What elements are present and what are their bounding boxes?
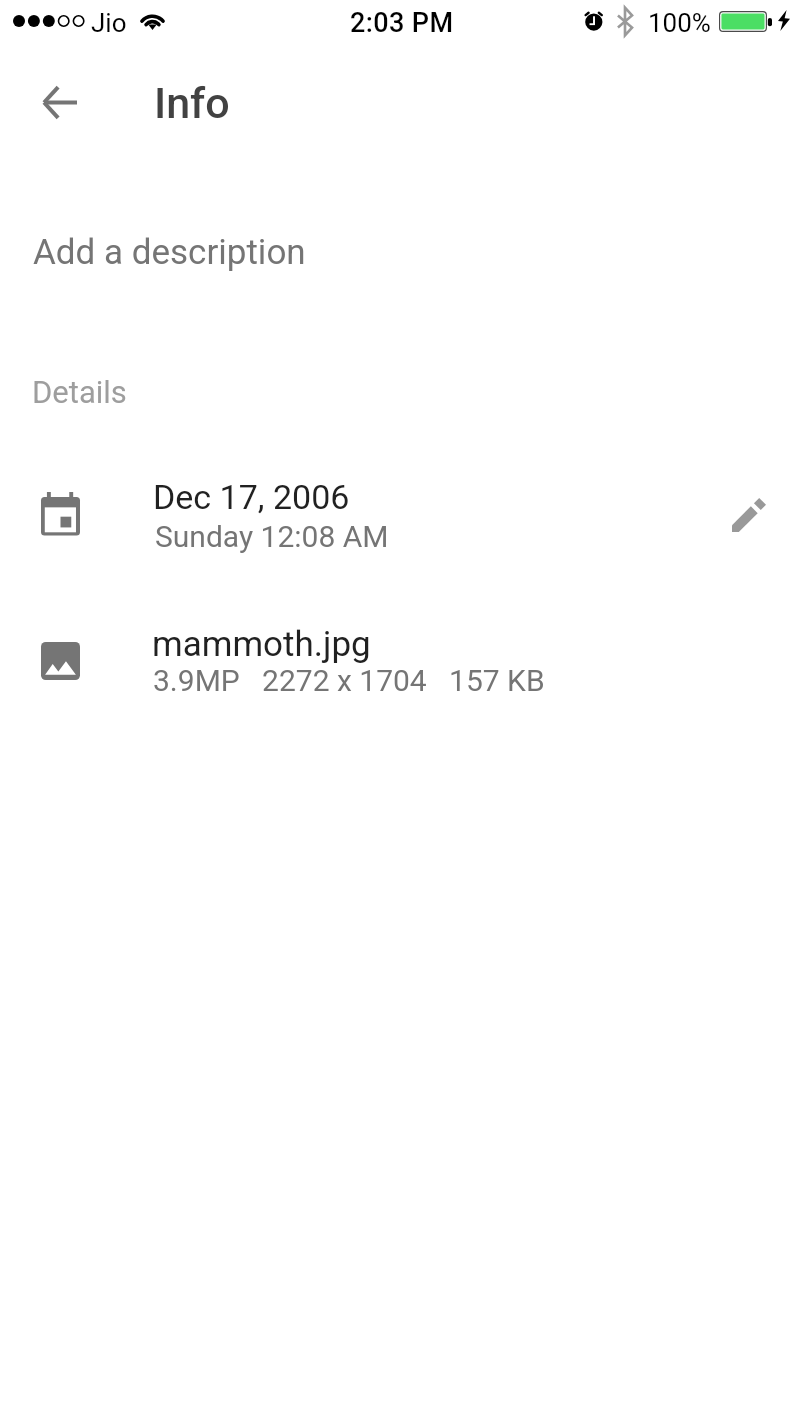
staticText: 3.9MP 2272 x 1704 157 KB (153, 663, 545, 698)
staticText: Details (32, 374, 127, 410)
staticText: Jio (91, 8, 127, 38)
staticText: 100% (648, 8, 711, 38)
staticText: Sunday 12:08 AM (155, 519, 389, 554)
button[interactable]: Dec 17, 2006 (0, 466, 800, 566)
button[interactable]: Add a description (0, 196, 800, 296)
button[interactable]: Edit date (717, 483, 781, 547)
button[interactable]: mammoth.jpg (0, 616, 800, 716)
staticText: mammoth.jpg (152, 624, 371, 665)
staticText: Info (154, 78, 230, 128)
staticText: Add a description (33, 232, 306, 273)
staticText: 2:03 PM (350, 7, 454, 39)
button[interactable]: Back (25, 68, 93, 136)
staticText: Dec 17, 2006 (153, 477, 350, 517)
